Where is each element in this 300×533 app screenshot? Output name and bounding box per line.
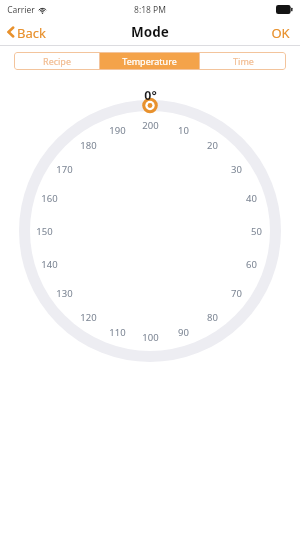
other: Back: [7, 26, 14, 38]
staticText: 160: [41, 192, 58, 205]
button[interactable]: Recipe: [14, 52, 99, 70]
staticText: 30: [231, 163, 242, 176]
staticText: Back: [17, 24, 46, 40]
staticText: Recipe: [43, 55, 71, 67]
button[interactable]: Back: [0, 19, 58, 45]
staticText: 190: [109, 124, 126, 137]
staticText: 40: [246, 192, 257, 205]
staticText: Mode: [131, 23, 169, 41]
staticText: 80: [207, 311, 218, 324]
staticText: 20: [207, 139, 218, 152]
staticText: 170: [56, 163, 73, 176]
staticText: 120: [80, 311, 97, 324]
button[interactable]: OK: [261, 19, 300, 45]
staticText: 110: [109, 326, 126, 339]
other: Battery full: [276, 5, 293, 14]
staticText: Time: [233, 55, 254, 67]
button[interactable]: Temperature: [100, 52, 199, 70]
staticText: 50: [251, 225, 262, 238]
staticText: 0°: [144, 87, 157, 103]
staticText: 70: [231, 287, 242, 300]
staticText: 100: [142, 331, 159, 344]
staticText: 140: [41, 258, 58, 271]
staticText: 150: [36, 225, 53, 238]
staticText: OK: [271, 24, 290, 40]
button[interactable]: Time: [200, 52, 286, 70]
staticText: Temperature: [122, 55, 177, 67]
staticText: 90: [178, 326, 189, 339]
staticText: 60: [246, 258, 257, 271]
staticText: Carrier: [7, 4, 35, 16]
staticText: 10: [178, 124, 189, 137]
staticText: 130: [56, 287, 73, 300]
staticText: 180: [80, 139, 97, 152]
staticText: 8:18 PM: [134, 4, 166, 16]
staticText: 200: [142, 119, 159, 132]
